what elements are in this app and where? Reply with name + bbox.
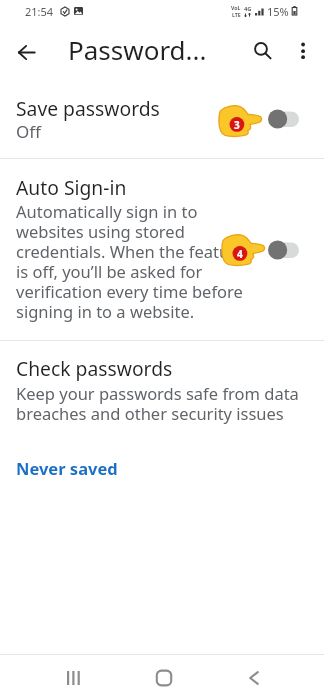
button[interactable]: Save passwords (0, 86, 324, 158)
button[interactable]: Back (236, 660, 272, 696)
staticText: Save passwords (16, 95, 160, 121)
staticText: VoL (231, 4, 241, 11)
staticText: Never saved (16, 457, 118, 479)
staticText: Keep your passwords safe from data breac… (16, 382, 308, 425)
button[interactable]: Recents (55, 660, 91, 696)
staticText: 4G (244, 5, 252, 13)
button[interactable]: Home (146, 660, 182, 696)
button[interactable]: Auto Sign-in (0, 159, 324, 340)
button[interactable]: Check passwords (0, 341, 324, 441)
button[interactable]: Never saved (0, 448, 324, 482)
button[interactable]: More options (285, 33, 321, 69)
staticText: 21:54 (25, 4, 54, 19)
staticText: Auto Sign-in (16, 174, 127, 200)
button[interactable]: Toggle (268, 109, 300, 129)
staticText: Check passwords (16, 355, 173, 381)
staticText: 4 (237, 247, 243, 261)
staticText: 15% (267, 4, 289, 19)
button[interactable]: Back (8, 34, 45, 71)
staticText: 3 (234, 118, 240, 132)
staticText: Off (16, 120, 41, 143)
button[interactable]: Toggle (268, 240, 300, 260)
staticText: Automatically sign in to websites using … (16, 200, 248, 323)
staticText: LTE (232, 11, 241, 18)
staticText: Password... (68, 32, 207, 67)
button[interactable]: Search (245, 33, 281, 69)
